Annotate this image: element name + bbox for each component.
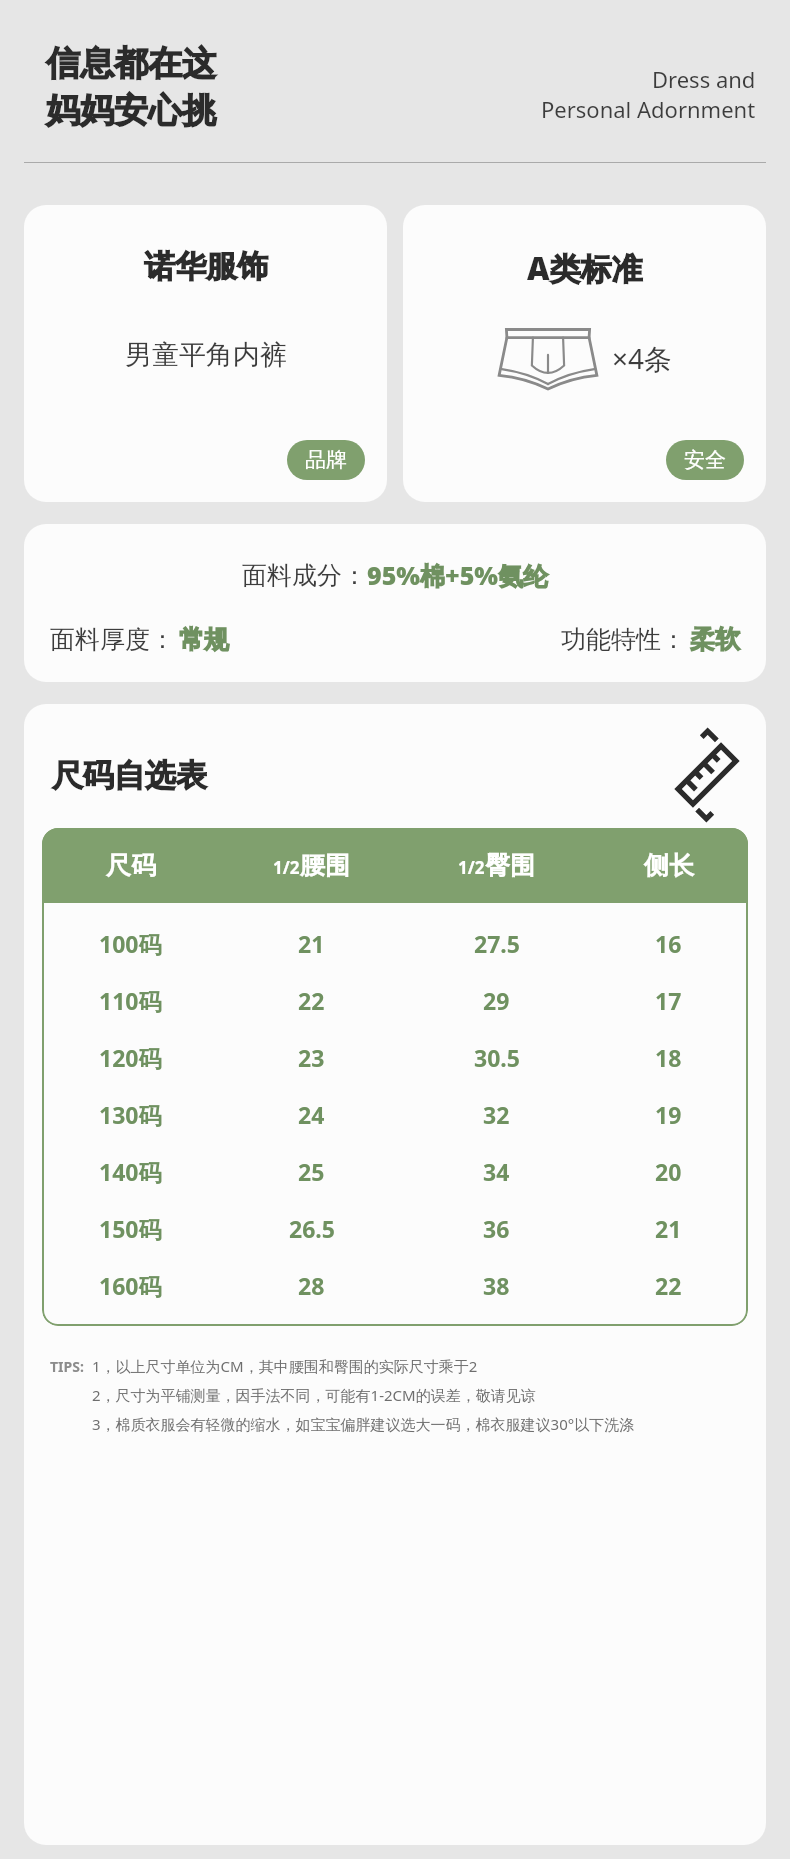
- staticText: 安全: [684, 447, 726, 473]
- staticText: 100码: [99, 928, 162, 959]
- staticText: 面料成分：: [242, 560, 367, 591]
- staticText: 面料厚度：: [50, 624, 175, 655]
- staticText: 29: [483, 985, 510, 1016]
- button[interactable]: 面料成分：: [24, 524, 766, 682]
- staticText: 20: [655, 1156, 682, 1187]
- staticText: 1/2: [458, 856, 485, 879]
- staticText: Personal Adornment: [541, 94, 756, 124]
- staticText: Dress and: [652, 64, 756, 94]
- button[interactable]: 100码: [42, 915, 748, 972]
- staticText: 150码: [99, 1213, 162, 1244]
- staticText: 18: [655, 1042, 682, 1073]
- staticText: 26.5: [289, 1213, 335, 1244]
- staticText: 23: [298, 1042, 325, 1073]
- staticText: ×4条: [612, 339, 673, 377]
- staticText: 3，棉质衣服会有轻微的缩水，如宝宝偏胖建议选大一码，棉衣服建议30°以下洗涤: [92, 1414, 635, 1434]
- staticText: 27.5: [474, 928, 520, 959]
- staticText: 19: [655, 1099, 682, 1130]
- staticText: 柔软: [690, 624, 740, 655]
- staticText: 38: [483, 1270, 510, 1301]
- staticText: 120码: [99, 1042, 162, 1073]
- button[interactable]: 130码: [42, 1086, 748, 1143]
- staticText: 2，尺寸为平铺测量，因手法不同，可能有1-2CM的误差，敬请见谅: [92, 1385, 536, 1405]
- staticText: 21: [655, 1213, 682, 1244]
- button[interactable]: 160码: [42, 1257, 748, 1314]
- staticText: 信息都在这: [46, 42, 216, 85]
- staticText: 品牌: [305, 447, 347, 473]
- staticText: 22: [655, 1270, 682, 1301]
- staticText: 17: [655, 985, 682, 1016]
- staticText: 110码: [99, 985, 162, 1016]
- staticText: 臀围: [485, 850, 535, 881]
- button[interactable]: 110码: [42, 972, 748, 1029]
- staticText: 24: [298, 1099, 325, 1130]
- staticText: 22: [298, 985, 325, 1016]
- button[interactable]: 诺华服饰: [24, 205, 387, 502]
- staticText: 36: [483, 1213, 510, 1244]
- staticText: 侧长: [644, 850, 694, 881]
- staticText: 常规: [179, 624, 229, 655]
- staticText: 妈妈安心挑: [46, 89, 216, 132]
- staticText: A类标准: [527, 247, 643, 289]
- staticText: 95%棉+5%氨纶: [367, 558, 549, 592]
- button[interactable]: 140码: [42, 1143, 748, 1200]
- staticText: TIPS:: [50, 1357, 84, 1376]
- staticText: 1/2: [273, 856, 300, 879]
- staticText: 功能特性：: [561, 624, 686, 655]
- staticText: 尺码: [106, 850, 156, 881]
- staticText: 25: [298, 1156, 325, 1187]
- button[interactable]: 120码: [42, 1029, 748, 1086]
- staticText: 140码: [99, 1156, 162, 1187]
- staticText: 尺码自选表: [52, 756, 207, 795]
- staticText: 男童平角内裤: [125, 338, 287, 372]
- staticText: 诺华服饰: [144, 247, 268, 286]
- button[interactable]: 品牌: [287, 440, 365, 480]
- other: Size ruler: [676, 744, 738, 806]
- staticText: 28: [298, 1270, 325, 1301]
- staticText: 1，以上尺寸单位为CM，其中腰围和臀围的实际尺寸乘于2: [92, 1356, 478, 1376]
- staticText: 32: [483, 1099, 510, 1130]
- staticText: 腰围: [300, 850, 350, 881]
- staticText: 160码: [99, 1270, 162, 1301]
- staticText: 16: [655, 928, 682, 959]
- staticText: 34: [483, 1156, 510, 1187]
- staticText: 21: [298, 928, 325, 959]
- button[interactable]: 150码: [42, 1200, 748, 1257]
- button[interactable]: A类标准: [403, 205, 766, 502]
- button[interactable]: 安全: [666, 440, 744, 480]
- staticText: 30.5: [474, 1042, 520, 1073]
- staticText: 130码: [99, 1099, 162, 1130]
